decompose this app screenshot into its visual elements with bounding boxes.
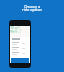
button[interactable]: [12, 46, 28, 51]
staticText: ride option: [0, 7, 64, 12]
staticText: Choose a: [0, 4, 64, 9]
button[interactable]: [11, 58, 29, 63]
button[interactable]: [12, 51, 28, 56]
button[interactable]: [12, 41, 28, 46]
